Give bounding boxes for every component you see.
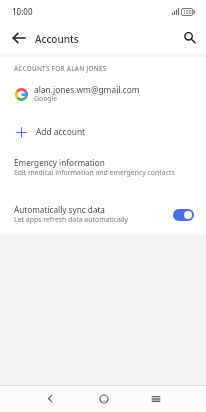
button[interactable]: Emergency information	[0, 144, 206, 189]
staticText: Let apps refresh data automatically	[14, 215, 128, 224]
button[interactable]: Automatically sync data	[0, 189, 206, 233]
button[interactable]: Add account	[0, 110, 206, 144]
button[interactable]: Back	[5, 24, 33, 52]
staticText: Edit medical information and emergency c…	[14, 168, 175, 177]
staticText: alan.jones.wm@gmail.com	[34, 84, 140, 95]
button[interactable]: alan.jones.wm@gmail.com	[0, 78, 206, 110]
button[interactable]: Recent apps	[142, 385, 169, 412]
staticText: 10:00	[12, 6, 33, 17]
staticText: 100	[183, 9, 192, 16]
button[interactable]: Back	[37, 385, 64, 412]
button[interactable]: Home	[90, 385, 117, 412]
staticText: Automatically sync data	[14, 204, 105, 215]
staticText: Emergency information	[14, 157, 105, 168]
staticText: Accounts	[35, 32, 79, 46]
staticText: Google	[34, 94, 58, 103]
button[interactable]: Automatically sync data	[173, 209, 194, 221]
button[interactable]: Search	[176, 24, 204, 52]
staticText: ACCOUNTS FOR ALAN JONES	[14, 64, 107, 73]
staticText: Add account	[36, 126, 86, 137]
